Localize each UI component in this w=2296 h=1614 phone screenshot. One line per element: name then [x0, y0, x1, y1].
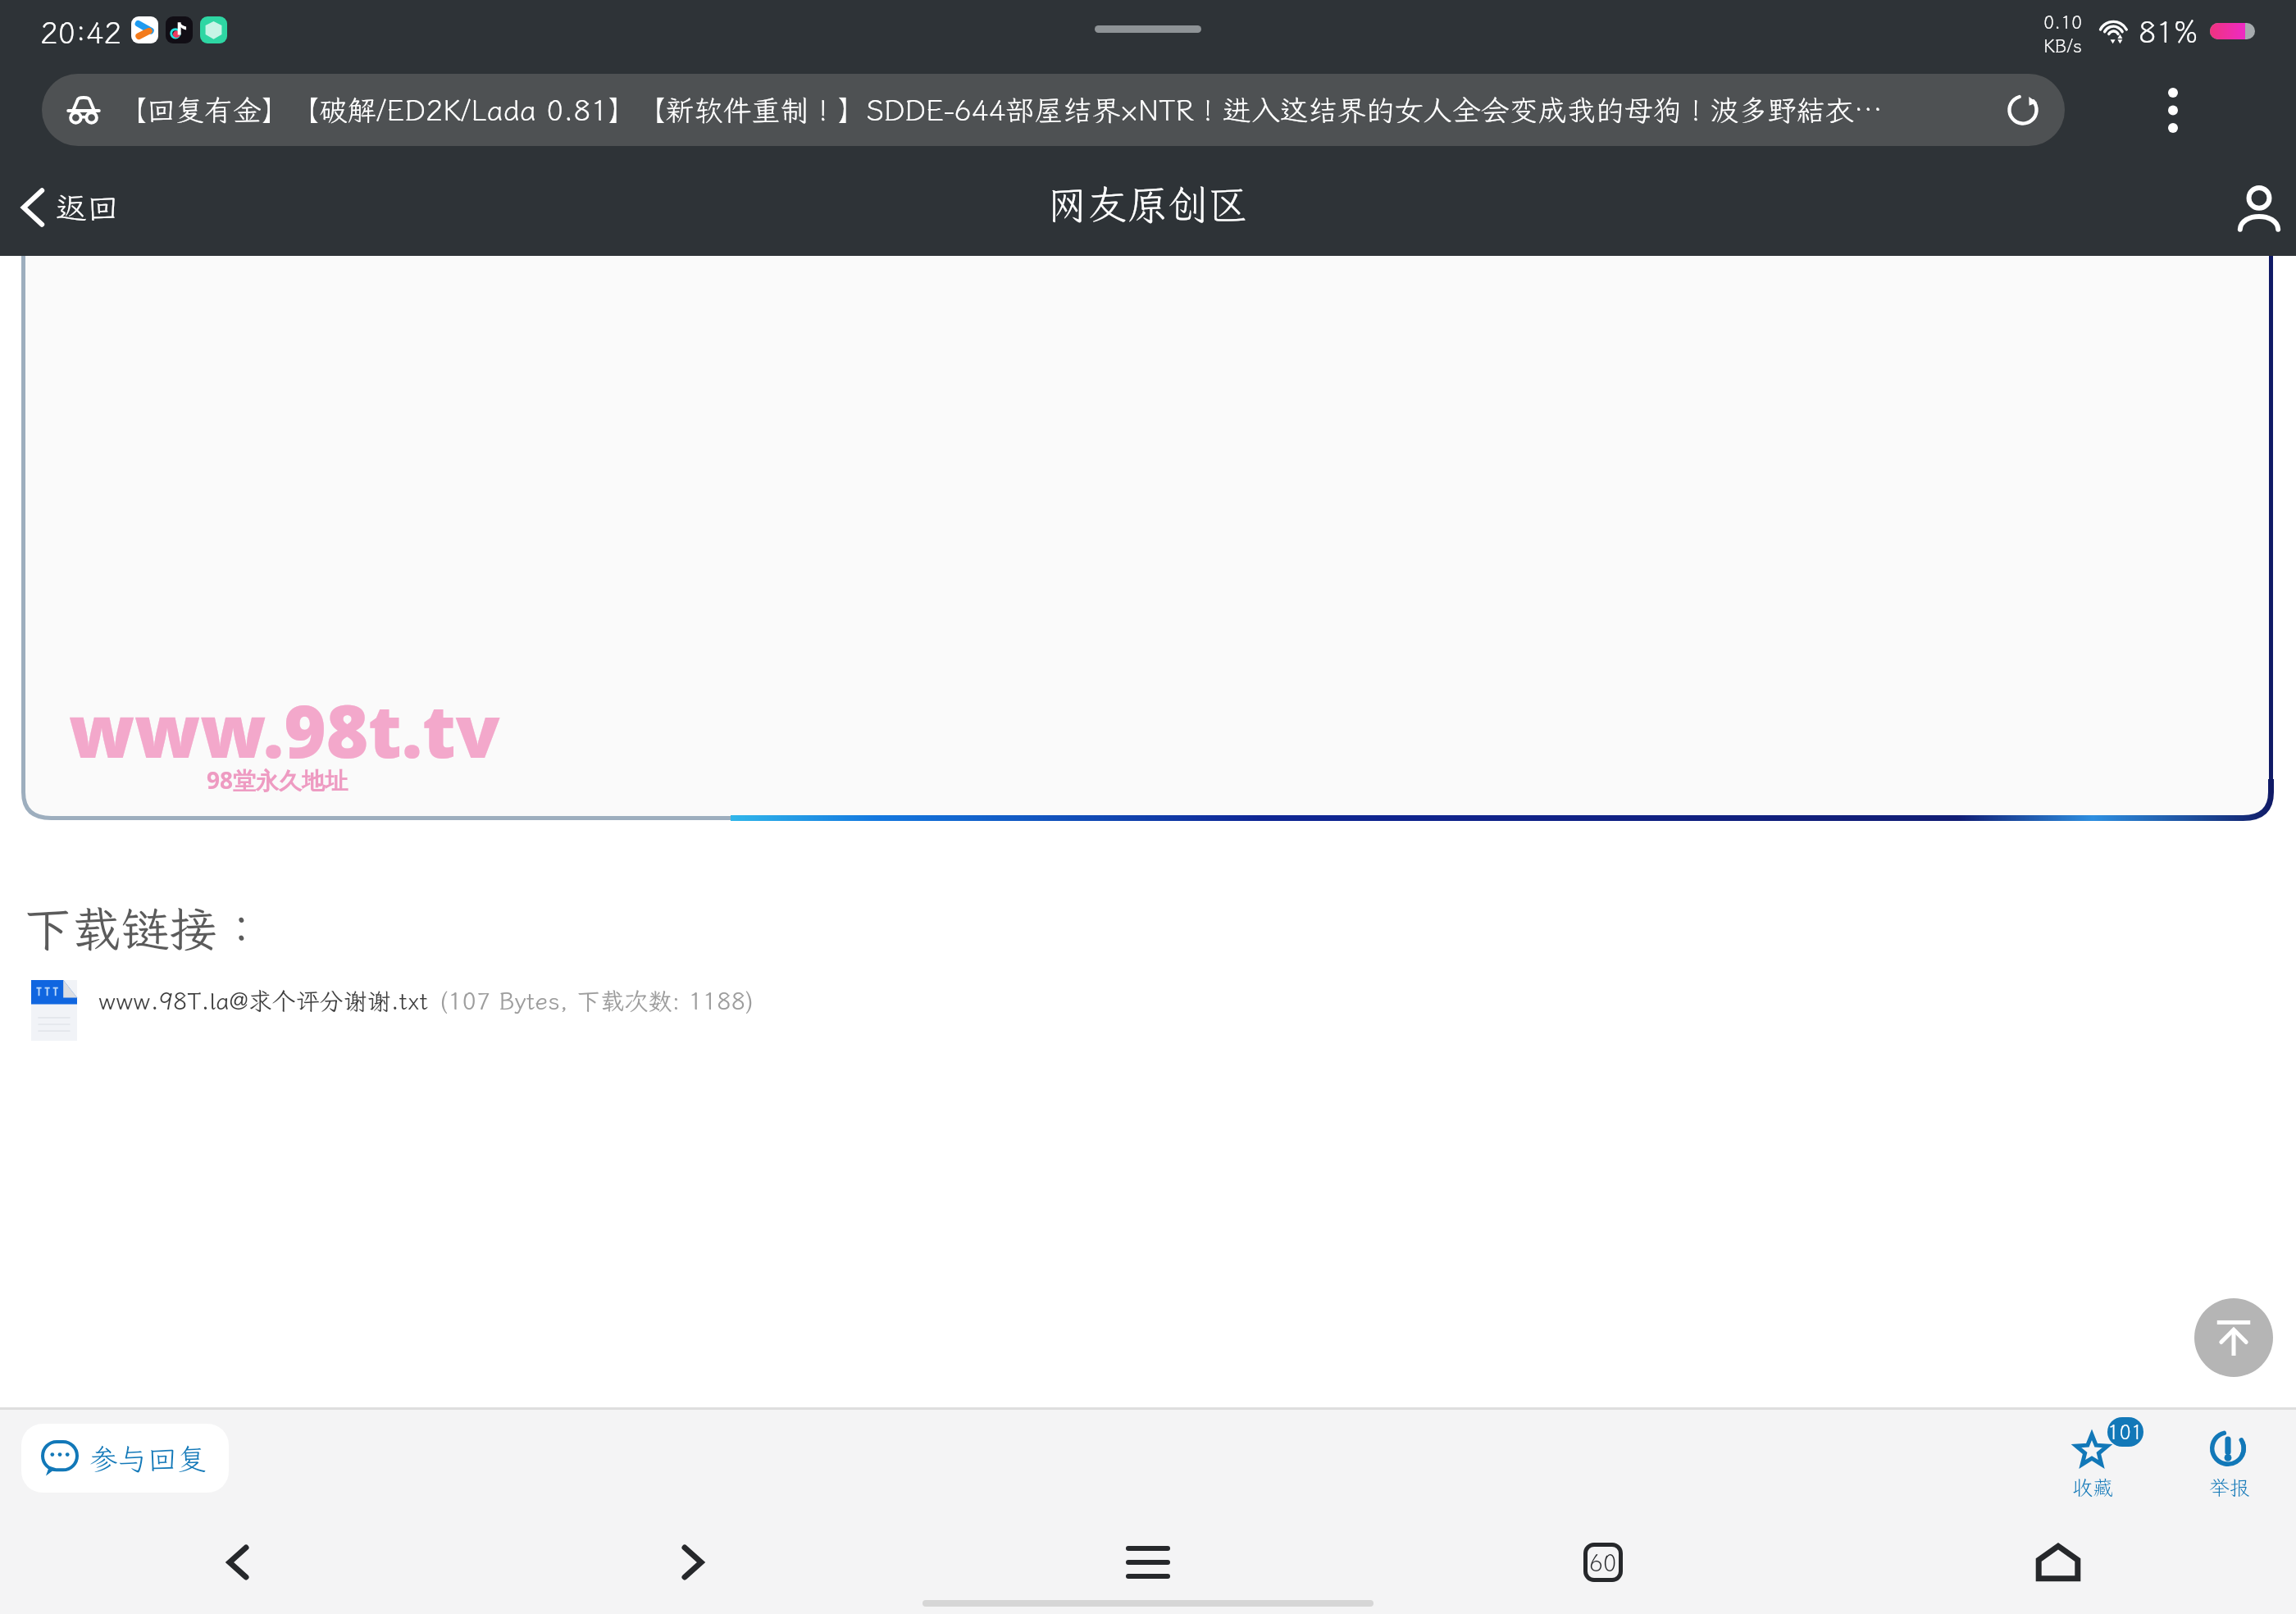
staticText: 60	[1589, 1548, 1617, 1578]
button[interactable]: Tabs	[1546, 1517, 1660, 1607]
button[interactable]: 收藏 Favorite 101	[2032, 1409, 2155, 1499]
button[interactable]: Forward	[635, 1517, 750, 1607]
button[interactable]: 返回	[10, 182, 130, 233]
staticText: 返回	[56, 187, 119, 228]
staticText: 【回复有金】【破解/ED2K/Lada 0.81】【新软件重制！】SDDE-64…	[118, 91, 1991, 129]
staticText: (107 Bytes, 下载次数: 1188)	[440, 985, 754, 1016]
button[interactable]: www.98T.la@求个评分谢谢.txt	[31, 977, 754, 1044]
staticText: 下载链接：	[24, 896, 266, 960]
staticText: 收藏	[2072, 1474, 2114, 1501]
button[interactable]: 【回复有金】【破解/ED2K/Lada 0.81】【新软件重制！】SDDE-64…	[42, 74, 2065, 146]
staticText: www.98T.la@求个评分谢谢.txt	[98, 985, 428, 1016]
button[interactable]: Home	[2001, 1517, 2116, 1607]
staticText: 98堂永久地址	[207, 764, 348, 796]
staticText: 101	[2107, 1419, 2143, 1445]
button[interactable]: Scroll to top	[2194, 1298, 2273, 1377]
button[interactable]: Account	[2235, 184, 2283, 231]
button[interactable]: 举报 Report	[2169, 1409, 2292, 1499]
button[interactable]: More options	[2111, 74, 2234, 146]
button[interactable]: Menu	[1091, 1517, 1205, 1607]
staticText: 20:42	[40, 13, 122, 46]
staticText: 网友原创区	[1047, 177, 1249, 230]
staticText: 81%	[2139, 12, 2198, 51]
staticText: 举报	[2209, 1474, 2251, 1501]
staticText: 0.10	[2043, 10, 2083, 34]
staticText: KB/s	[2043, 34, 2083, 52]
staticText: 参与回复	[89, 1439, 207, 1478]
button[interactable]: Back	[180, 1517, 295, 1607]
button[interactable]: 参与回复	[21, 1424, 229, 1493]
staticText: www.98t.tv	[69, 681, 500, 779]
